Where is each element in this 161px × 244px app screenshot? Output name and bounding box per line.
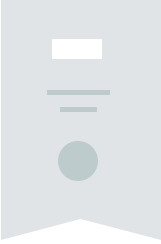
button[interactable]: Avatar [58,141,98,181]
